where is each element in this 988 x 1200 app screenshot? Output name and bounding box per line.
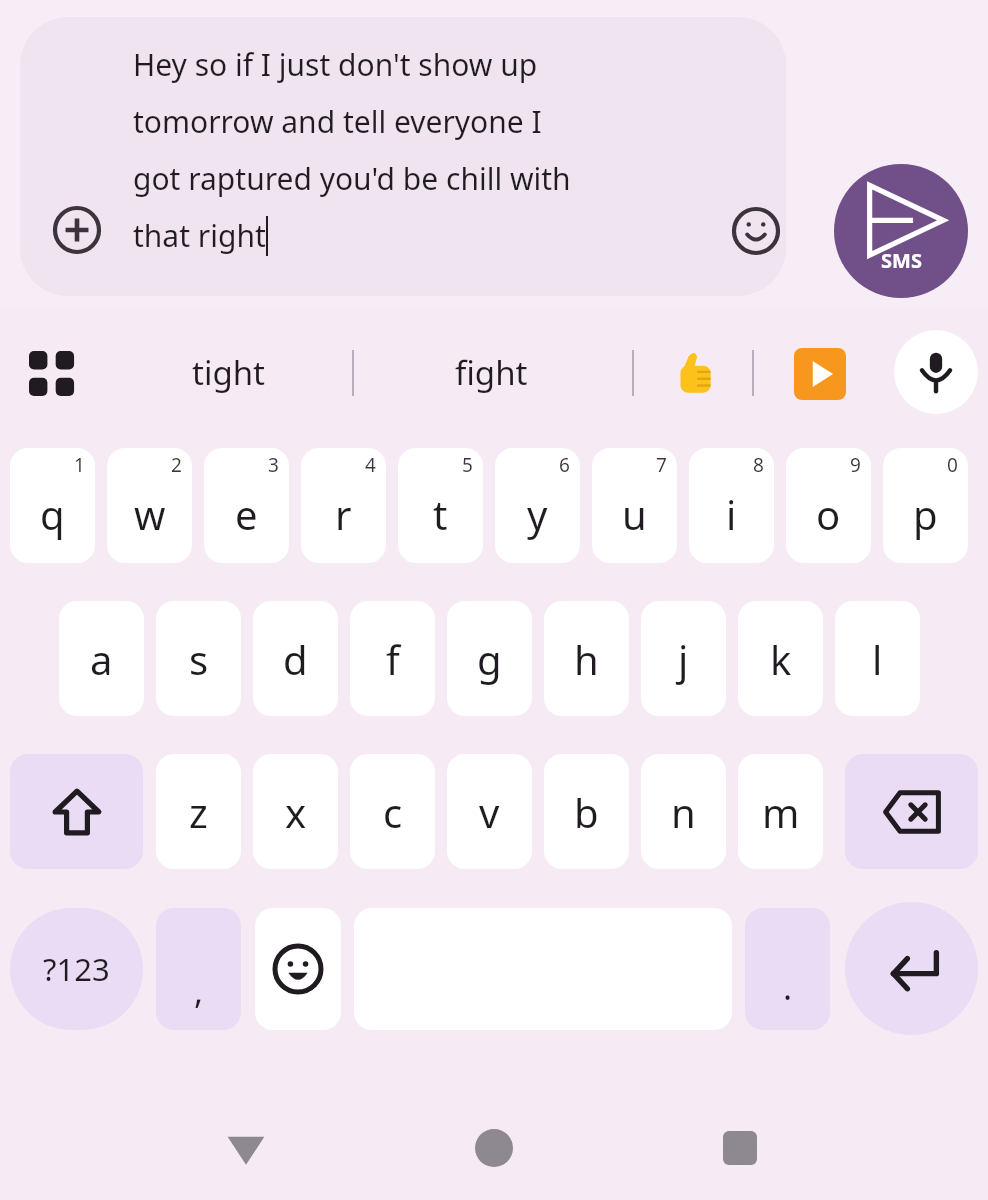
button[interactable]: Symbols	[10, 908, 143, 1030]
staticText: 4	[365, 452, 376, 478]
staticText: got raptured you'd be chill with	[133, 158, 571, 199]
staticText: 8	[753, 452, 764, 478]
button[interactable]: Back	[206, 1096, 286, 1200]
button[interactable]: Send SMS	[834, 164, 968, 298]
staticText: u	[622, 487, 647, 541]
staticText: tight	[192, 350, 266, 395]
button[interactable]: ,	[156, 908, 241, 1030]
staticText: 9	[850, 452, 861, 478]
button[interactable]: u	[592, 448, 677, 563]
staticText: v	[479, 785, 500, 839]
staticText: 5	[462, 452, 473, 478]
button[interactable]	[20, 17, 786, 296]
button[interactable]: x	[253, 754, 338, 869]
staticText: r	[335, 487, 352, 541]
staticText: SMS	[881, 247, 922, 274]
button[interactable]: z	[156, 754, 241, 869]
button[interactable]: l	[835, 601, 920, 716]
button[interactable]: Keyboard toolbar	[18, 340, 86, 408]
staticText: 6	[559, 452, 570, 478]
staticText: tomorrow and tell everyone I	[133, 101, 542, 142]
staticText: c	[383, 785, 403, 839]
button[interactable]: h	[544, 601, 629, 716]
button[interactable]: GIF search	[784, 338, 856, 410]
staticText: Hey so if I just don't show up	[133, 44, 538, 85]
button[interactable]: Home	[454, 1096, 534, 1200]
staticText: y	[527, 487, 548, 541]
staticText: i	[726, 487, 737, 541]
staticText: x	[285, 785, 307, 839]
staticText: o	[816, 487, 841, 541]
button[interactable]: Add attachment	[50, 203, 104, 257]
staticText: j	[678, 632, 689, 686]
button[interactable]: s	[156, 601, 241, 716]
button[interactable]: f	[350, 601, 435, 716]
staticText: q	[40, 487, 65, 541]
staticText: f	[386, 632, 400, 686]
staticText: k	[770, 632, 792, 686]
button[interactable]: Voice input	[894, 330, 978, 414]
button[interactable]: m	[738, 754, 823, 869]
staticText: s	[189, 632, 209, 686]
staticText: fight	[455, 350, 528, 395]
button[interactable]: k	[738, 601, 823, 716]
button[interactable]: Enter	[845, 902, 978, 1035]
button[interactable]: e	[204, 448, 289, 563]
button[interactable]: d	[253, 601, 338, 716]
button[interactable]: Shift	[10, 754, 143, 869]
button[interactable]: Emoji	[255, 908, 341, 1030]
button[interactable]: Backspace	[845, 754, 978, 869]
staticText: h	[574, 632, 599, 686]
staticText: n	[671, 785, 696, 839]
button[interactable]: y	[495, 448, 580, 563]
staticText: l	[872, 632, 883, 686]
button[interactable]: tight	[106, 308, 352, 436]
staticText: 7	[656, 452, 667, 478]
staticText: w	[134, 487, 166, 541]
button[interactable]: fight	[368, 308, 614, 436]
button[interactable]: n	[641, 754, 726, 869]
button[interactable]: q	[10, 448, 95, 563]
staticText: m	[762, 785, 800, 839]
button[interactable]: o	[786, 448, 871, 563]
staticText: b	[574, 785, 599, 839]
button[interactable]: j	[641, 601, 726, 716]
button[interactable]: p	[883, 448, 968, 563]
button[interactable]: Insert emoji	[728, 203, 784, 259]
button[interactable]: t	[398, 448, 483, 563]
staticText: 3	[268, 452, 279, 478]
button[interactable]: v	[447, 754, 532, 869]
staticText: 1	[74, 452, 85, 478]
button[interactable]: .	[745, 908, 830, 1030]
button[interactable]: b	[544, 754, 629, 869]
button[interactable]: w	[107, 448, 192, 563]
button[interactable]: r	[301, 448, 386, 563]
button[interactable]: a	[59, 601, 144, 716]
staticText: t	[433, 487, 448, 541]
staticText: 2	[171, 452, 182, 478]
button[interactable]: g	[447, 601, 532, 716]
staticText: that right	[133, 215, 266, 256]
button[interactable]: i	[689, 448, 774, 563]
staticText: a	[90, 632, 113, 686]
staticText: p	[913, 487, 938, 541]
staticText: ?123	[43, 948, 110, 990]
staticText: z	[189, 785, 208, 839]
staticText: .	[783, 964, 793, 1010]
staticText: 0	[947, 452, 958, 478]
staticText: d	[283, 632, 308, 686]
staticText: ,	[194, 968, 204, 1014]
staticText: g	[477, 632, 502, 686]
button[interactable]: Recent apps	[700, 1096, 780, 1200]
button[interactable]: Thumbs up sticker	[658, 338, 730, 410]
staticText: e	[235, 487, 258, 541]
button[interactable]: c	[350, 754, 435, 869]
